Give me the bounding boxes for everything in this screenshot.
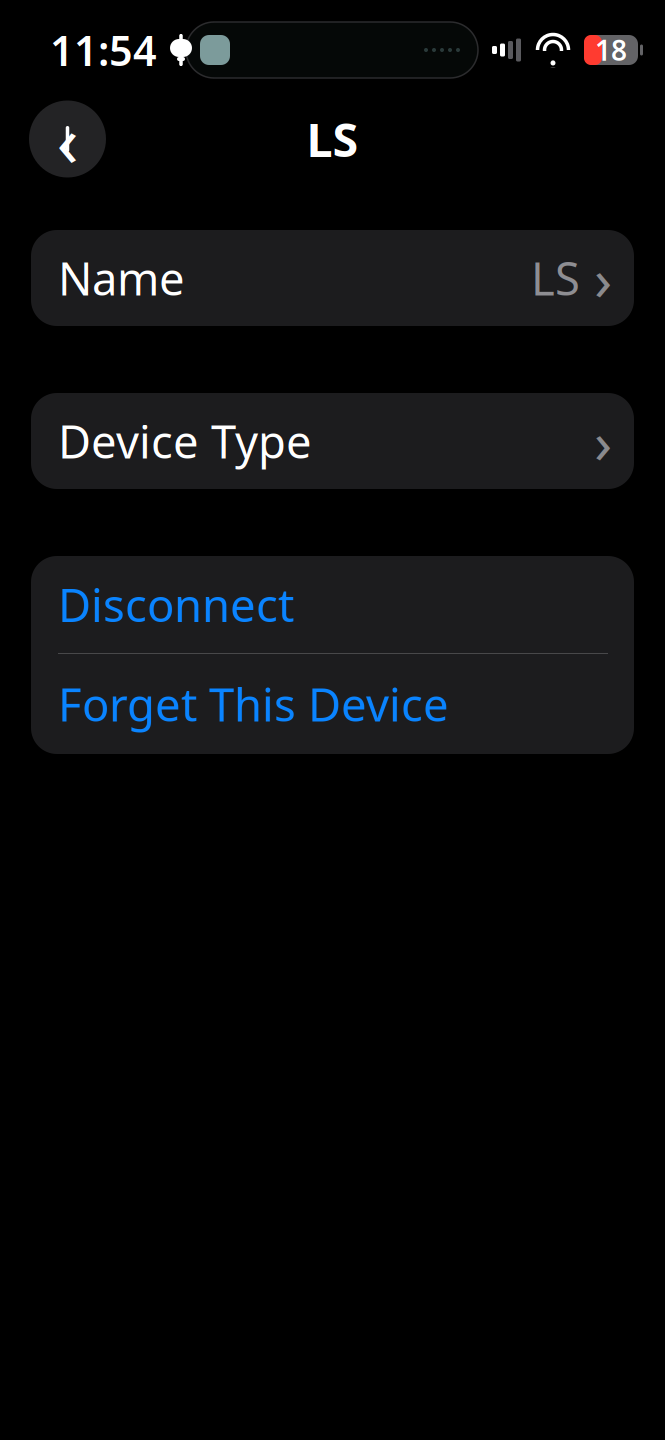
button[interactable]: Disconnect xyxy=(31,556,634,653)
button[interactable]: Back xyxy=(29,100,106,177)
staticText: Device Type xyxy=(58,411,312,471)
button[interactable]: Name xyxy=(31,230,634,326)
staticText: Forget This Device xyxy=(58,674,449,734)
staticText: › xyxy=(594,239,612,317)
staticText: LS xyxy=(531,248,580,308)
staticText: › xyxy=(594,402,612,480)
button[interactable]: Forget This Device xyxy=(31,654,634,754)
staticText: ‹ xyxy=(56,91,78,187)
staticText: Name xyxy=(58,248,185,308)
staticText: Disconnect xyxy=(58,574,294,635)
button[interactable]: Device Type xyxy=(31,393,634,489)
staticText: 11:54 xyxy=(50,23,157,77)
staticText: 18 xyxy=(595,31,627,69)
staticText: LS xyxy=(306,108,358,170)
